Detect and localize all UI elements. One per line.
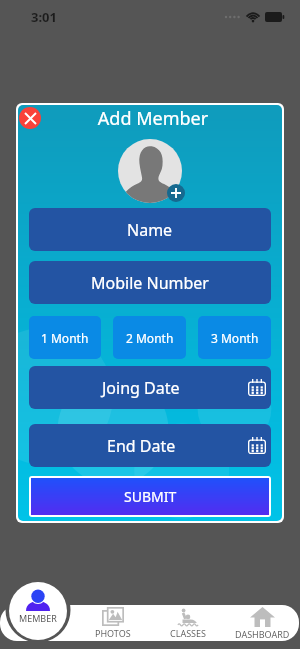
button[interactable]: PHOTOS [76, 605, 150, 641]
staticText: Joing Date [102, 377, 180, 399]
staticText: 3 Month [211, 330, 259, 346]
button[interactable]: CLASSES [150, 605, 225, 641]
button[interactable]: Joing Date [29, 366, 271, 409]
button[interactable]: SUBMIT [31, 478, 269, 515]
staticText: PHOTOS [95, 627, 131, 639]
staticText: Add Member [21, 106, 282, 131]
button[interactable]: Close [19, 107, 41, 129]
staticText: SUBMIT [124, 487, 177, 506]
button[interactable]: 3 Month [198, 316, 271, 359]
staticText: Mobile Number [91, 272, 209, 294]
staticText: DASHBOARD [235, 628, 290, 640]
staticText: MEMBER [19, 612, 57, 624]
button[interactable]: 2 Month [113, 316, 186, 359]
button[interactable]: DASHBOARD [225, 605, 300, 641]
staticText: End Date [107, 435, 176, 457]
button[interactable]: End Date [29, 424, 271, 467]
staticText: 1 Month [41, 330, 89, 346]
staticText: CLASSES [170, 627, 206, 639]
button[interactable]: Mobile Number [29, 261, 271, 304]
button[interactable]: MEMBER [9, 582, 67, 640]
staticText: 3:01 [31, 8, 57, 26]
button[interactable]: Profile photo [118, 139, 182, 203]
staticText: 2 Month [126, 330, 174, 346]
staticText: Name [127, 219, 173, 241]
button[interactable]: 1 Month [29, 316, 101, 359]
button[interactable]: Name [29, 208, 271, 251]
button[interactable]: Add photo [167, 184, 185, 202]
